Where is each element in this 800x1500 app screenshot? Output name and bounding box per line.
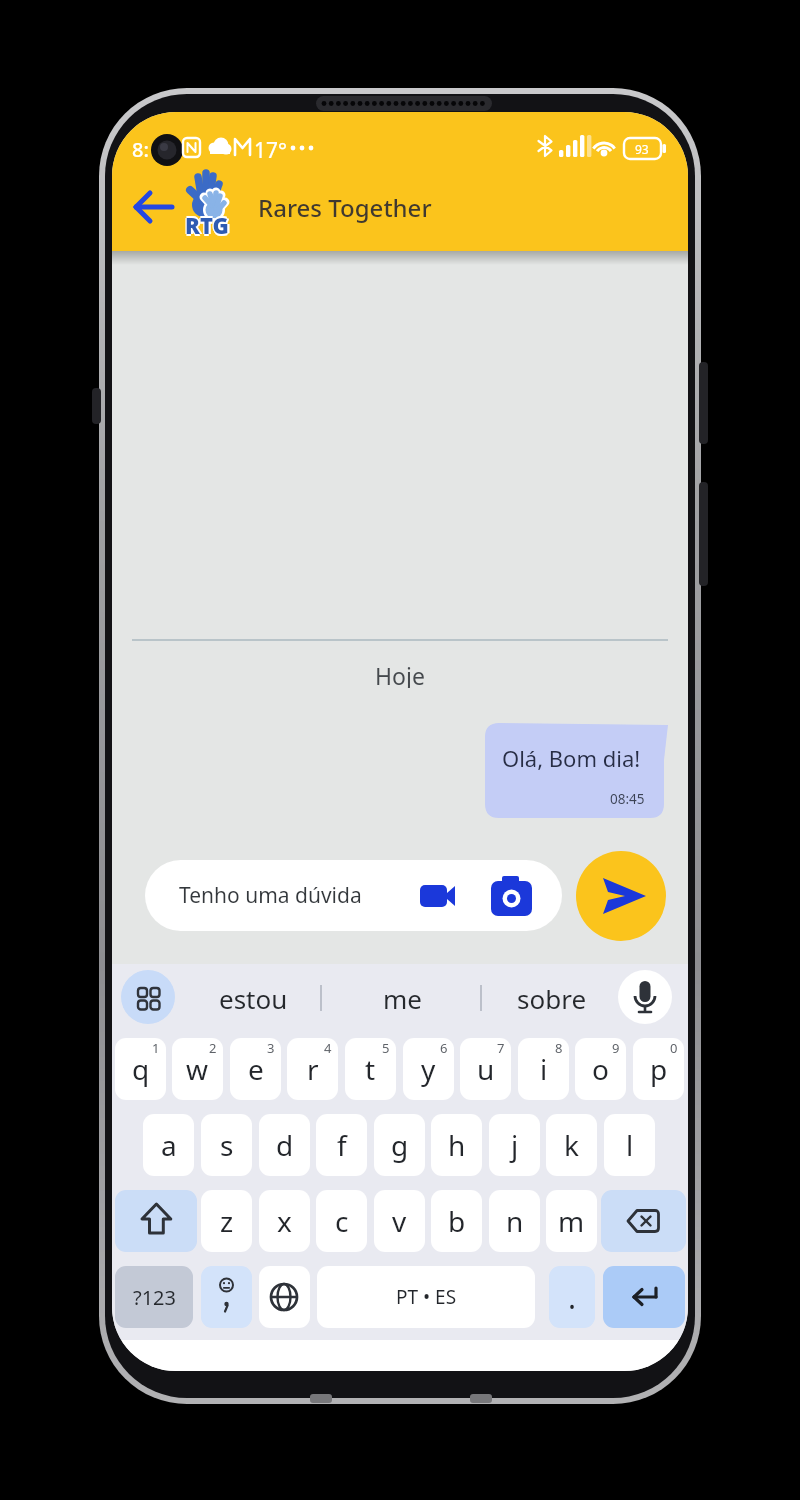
button[interactable]: w — [172, 1038, 223, 1100]
staticText: k — [564, 1126, 579, 1164]
button[interactable]: u — [460, 1038, 511, 1100]
staticText: t — [365, 1050, 376, 1088]
staticText: Rares Together — [258, 191, 432, 224]
staticText: RTG — [185, 212, 229, 240]
staticText: a — [161, 1126, 177, 1164]
button[interactable]: d — [259, 1114, 310, 1176]
staticText: w — [186, 1050, 209, 1088]
button[interactable]: v — [374, 1190, 425, 1252]
staticText: g — [391, 1126, 409, 1164]
staticText: 7 — [497, 1039, 505, 1057]
button[interactable]: j — [489, 1114, 540, 1176]
button[interactable]: e — [230, 1038, 281, 1100]
staticText: 4 — [324, 1039, 332, 1057]
button[interactable] — [603, 1266, 685, 1328]
button[interactable]: r — [287, 1038, 338, 1100]
staticText: 08:45 — [610, 790, 645, 808]
button[interactable] — [618, 970, 672, 1024]
staticText: RTG — [187, 210, 231, 238]
staticText: 93 — [635, 141, 649, 157]
button[interactable]: n — [489, 1190, 540, 1252]
button[interactable]: k — [546, 1114, 597, 1176]
staticText: 1 — [152, 1039, 160, 1057]
button[interactable] — [121, 970, 175, 1024]
button[interactable]: . — [549, 1266, 595, 1328]
staticText: r — [307, 1050, 319, 1088]
button[interactable] — [145, 860, 562, 931]
staticText: m — [558, 1202, 585, 1240]
staticText: estou — [219, 981, 288, 1016]
staticText: Hoje — [375, 660, 425, 688]
button[interactable]: estou — [192, 978, 314, 1018]
staticText: j — [511, 1126, 519, 1164]
staticText: i — [540, 1050, 548, 1088]
button[interactable]: o — [575, 1038, 626, 1100]
staticText: RTG — [184, 210, 228, 238]
staticText: 5 — [382, 1039, 390, 1057]
staticText: d — [276, 1126, 294, 1164]
staticText: 6 — [440, 1039, 448, 1057]
button[interactable]: t — [345, 1038, 396, 1100]
staticText: e — [248, 1050, 264, 1088]
button[interactable]: z — [201, 1190, 252, 1252]
button[interactable]: s — [201, 1114, 252, 1176]
button[interactable]: g — [374, 1114, 425, 1176]
staticText: 3 — [267, 1039, 275, 1057]
staticText: b — [448, 1202, 466, 1240]
button[interactable]: a — [143, 1114, 194, 1176]
button[interactable]: x — [259, 1190, 310, 1252]
staticText: u — [477, 1050, 495, 1088]
staticText: l — [626, 1126, 634, 1164]
button[interactable]: PT • ES — [317, 1266, 535, 1328]
staticText: PT • ES — [396, 1284, 457, 1310]
button[interactable]: sobre — [491, 978, 613, 1018]
button[interactable] — [201, 1266, 252, 1328]
staticText: 0 — [670, 1039, 678, 1057]
button[interactable]: m — [546, 1190, 597, 1252]
staticText: s — [220, 1126, 234, 1164]
staticText: 2 — [209, 1039, 217, 1057]
button[interactable]: c — [316, 1190, 367, 1252]
staticText: 9 — [612, 1039, 620, 1057]
staticText: f — [337, 1126, 347, 1164]
staticText: q — [132, 1050, 150, 1088]
button[interactable] — [576, 851, 666, 941]
staticText: sobre — [517, 981, 587, 1016]
button[interactable] — [484, 870, 538, 922]
staticText: me — [383, 981, 422, 1016]
staticText: y — [421, 1050, 436, 1088]
staticText: ?123 — [133, 1284, 176, 1311]
button[interactable] — [130, 188, 180, 228]
staticText: RTG — [185, 208, 229, 236]
button[interactable]: y — [403, 1038, 454, 1100]
staticText: h — [448, 1126, 466, 1164]
staticText: Olá, Bom dia! — [502, 743, 641, 773]
button[interactable]: f — [316, 1114, 367, 1176]
staticText: x — [277, 1202, 292, 1240]
button[interactable] — [259, 1266, 310, 1328]
button[interactable] — [412, 874, 458, 918]
button[interactable]: ?123 — [115, 1266, 193, 1328]
button[interactable]: h — [431, 1114, 482, 1176]
staticText: c — [335, 1202, 349, 1240]
staticText: v — [392, 1202, 407, 1240]
staticText: . — [568, 1277, 577, 1318]
button[interactable]: b — [431, 1190, 482, 1252]
button[interactable]: q — [115, 1038, 166, 1100]
button[interactable] — [115, 1190, 197, 1252]
staticText: z — [220, 1202, 234, 1240]
staticText: 8 — [555, 1039, 563, 1057]
staticText: Tenho uma dúvida — [179, 881, 362, 910]
button[interactable]: me — [341, 978, 463, 1018]
staticText: o — [592, 1050, 609, 1088]
staticText: 8: — [132, 136, 149, 162]
button[interactable]: i — [518, 1038, 569, 1100]
staticText: p — [650, 1050, 668, 1088]
button[interactable]: p — [633, 1038, 684, 1100]
button[interactable]: l — [604, 1114, 655, 1176]
staticText: RTG — [185, 210, 229, 238]
staticText: n — [506, 1202, 524, 1240]
button[interactable] — [601, 1190, 686, 1252]
staticText: 17° — [254, 136, 288, 162]
